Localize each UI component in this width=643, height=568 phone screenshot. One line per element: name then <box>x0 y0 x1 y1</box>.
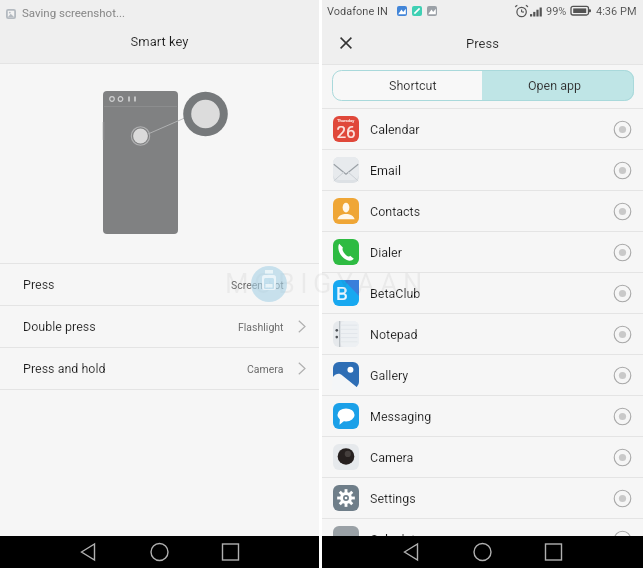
button[interactable]: Press <box>0 264 319 305</box>
staticText: Saving screenshot... <box>22 6 126 19</box>
button[interactable]: B <box>322 273 643 313</box>
staticText: Camera <box>370 450 414 465</box>
button[interactable]: Close <box>328 25 364 61</box>
staticText: Calendar <box>370 122 420 137</box>
staticText: Contacts <box>370 204 421 219</box>
staticText: Email <box>370 163 401 178</box>
button[interactable]: Settings <box>322 478 643 518</box>
staticText: Shortcut <box>389 78 437 93</box>
staticText: Calculator <box>370 532 427 547</box>
button[interactable]: Contacts <box>322 191 643 231</box>
staticText: Double press <box>23 319 96 334</box>
button[interactable]: Shortcut <box>332 70 482 101</box>
button[interactable]: Notepad <box>322 314 643 354</box>
button[interactable]: Gallery <box>322 355 643 395</box>
staticText: Press and hold <box>23 361 106 376</box>
staticText: Messaging <box>370 409 432 424</box>
staticText: 4:36 PM <box>596 5 637 18</box>
staticText: MOBIGYAAN <box>225 268 428 300</box>
staticText: 26 <box>333 122 359 142</box>
staticText: B <box>336 282 348 304</box>
staticText: Open app <box>528 78 582 93</box>
staticText: Settings <box>370 491 416 506</box>
staticText: 99% <box>546 5 567 18</box>
staticText: Press <box>322 36 643 51</box>
staticText: Gallery <box>370 368 409 383</box>
button[interactable]: Messaging <box>322 396 643 436</box>
button[interactable]: Email <box>322 150 643 190</box>
button[interactable]: Double press <box>0 306 319 347</box>
button[interactable]: Calculator <box>322 519 643 559</box>
button[interactable]: Camera <box>322 437 643 477</box>
staticText: BetaClub <box>370 286 421 301</box>
staticText: Dialer <box>370 245 402 260</box>
staticText: Vodafone IN <box>327 5 388 18</box>
staticText: Press <box>23 277 55 292</box>
staticText: Thursday <box>337 118 355 123</box>
staticText: Notepad <box>370 327 418 342</box>
button[interactable]: Dialer <box>322 232 643 272</box>
button[interactable]: Press and hold <box>0 348 319 389</box>
staticText: Screenshot <box>231 279 284 291</box>
staticText: Smart key <box>0 34 319 49</box>
staticText: Camera <box>247 363 284 375</box>
button[interactable]: Thursday <box>322 109 643 149</box>
staticText: Flashlight <box>238 321 284 333</box>
button[interactable]: Open app <box>482 70 634 101</box>
